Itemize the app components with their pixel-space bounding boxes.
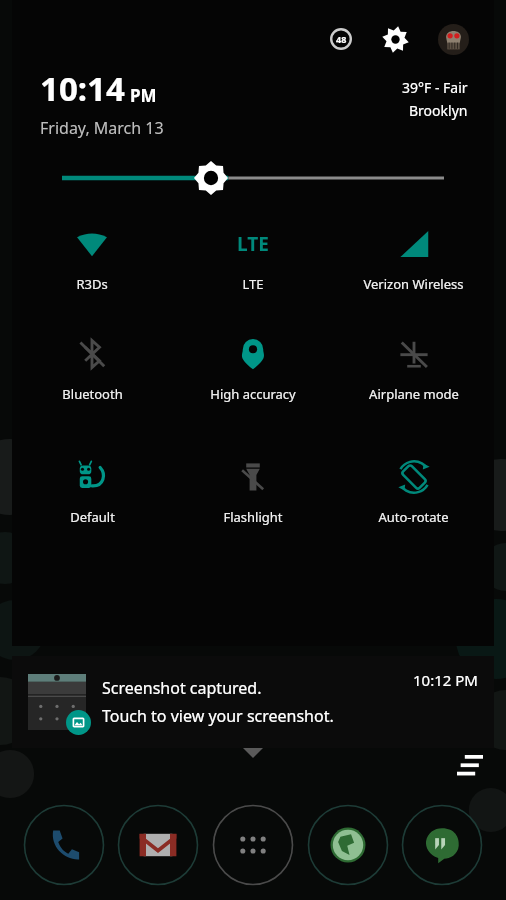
button[interactable]: Default <box>12 438 172 561</box>
staticText: LTE <box>242 275 264 293</box>
staticText: Verizon Wireless <box>363 275 464 293</box>
staticText: 48 <box>336 33 347 45</box>
staticText: Default <box>70 508 115 526</box>
button[interactable]: Clear all notifications <box>450 748 490 784</box>
staticText: Brooklyn <box>409 101 468 120</box>
staticText: Touch to view your screenshot. <box>102 705 334 727</box>
button[interactable]: Bluetooth <box>12 315 172 438</box>
staticText: Airplane mode <box>369 385 459 403</box>
staticText: Auto-rotate <box>378 508 449 526</box>
button[interactable]: LTE <box>172 215 333 315</box>
button[interactable]: Phone <box>23 804 105 886</box>
button[interactable]: Verizon Wireless <box>333 215 494 315</box>
button[interactable]: Brightness <box>12 161 494 195</box>
staticText: Flashlight <box>223 508 283 526</box>
staticText: LTE <box>237 231 269 257</box>
button[interactable]: 39°F - Fair <box>402 66 468 120</box>
button[interactable]: Apps <box>212 804 294 886</box>
button[interactable]: Hangouts <box>401 804 483 886</box>
button[interactable]: Airplane mode <box>333 315 494 438</box>
button[interactable]: Browser <box>307 804 389 886</box>
staticText: Friday, March 13 <box>40 117 164 139</box>
staticText: 10:14 <box>40 66 125 111</box>
button[interactable]: Screenshot captured. <box>12 656 494 748</box>
staticText: PM <box>130 84 157 107</box>
button[interactable]: 10:14 <box>40 66 402 139</box>
button[interactable]: High accuracy <box>172 315 333 438</box>
staticText: Bluetooth <box>62 385 123 403</box>
staticText: 39°F - Fair <box>402 78 468 97</box>
staticText: 10:12 PM <box>413 670 478 690</box>
button[interactable]: Battery 48 percent <box>326 24 356 54</box>
button[interactable]: R3Ds <box>12 215 172 315</box>
button[interactable]: User profile <box>436 22 470 56</box>
button[interactable]: Gmail <box>117 804 199 886</box>
button[interactable]: Settings <box>378 22 412 56</box>
button[interactable]: Flashlight <box>172 438 333 561</box>
button[interactable]: Auto-rotate <box>333 438 494 561</box>
staticText: High accuracy <box>210 385 296 403</box>
staticText: R3Ds <box>76 275 108 293</box>
staticText: Screenshot captured. <box>102 677 262 699</box>
